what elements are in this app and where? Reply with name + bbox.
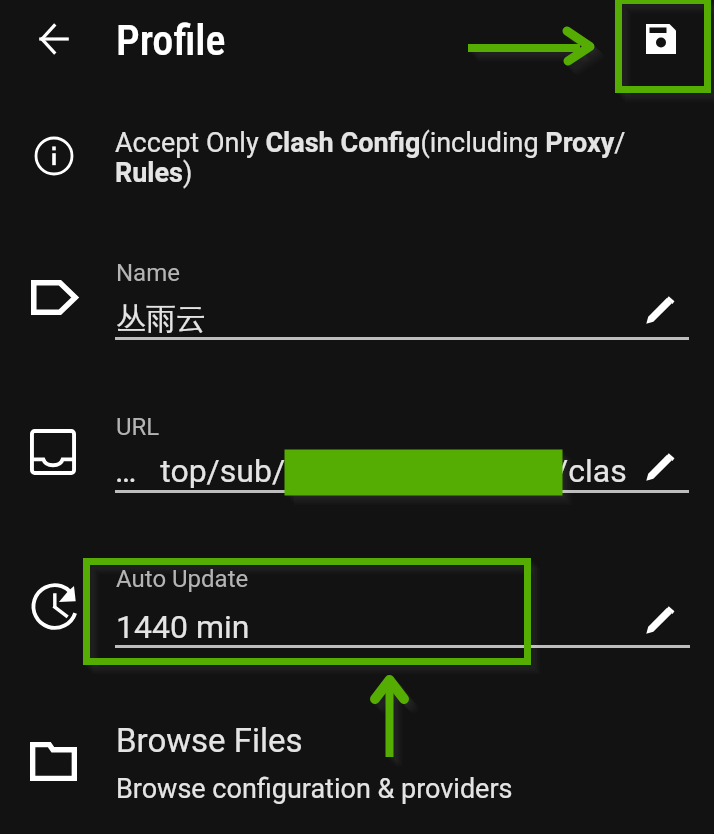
button[interactable]: Back xyxy=(22,7,86,71)
button[interactable]: Browse Files xyxy=(116,721,303,760)
button[interactable]: Browse configuration & providers xyxy=(116,773,513,805)
staticText: 1440 min xyxy=(116,608,250,646)
button[interactable]: Profile xyxy=(116,16,226,65)
staticText: URL xyxy=(116,413,160,441)
button[interactable]: Edit auto update interval xyxy=(645,603,677,635)
staticText: Name xyxy=(116,259,180,287)
staticText: Accept Only Clash Config(including Proxy… xyxy=(115,127,642,188)
staticText: Auto Update xyxy=(116,565,249,593)
staticText: 丛雨云 xyxy=(116,300,206,338)
button[interactable]: Save xyxy=(633,11,689,67)
staticText: … top/sub/xxxxxxxxxxxxxxxxx/clas xyxy=(115,452,627,490)
button[interactable]: Edit URL xyxy=(645,450,677,482)
button[interactable]: Edit name xyxy=(645,293,677,325)
